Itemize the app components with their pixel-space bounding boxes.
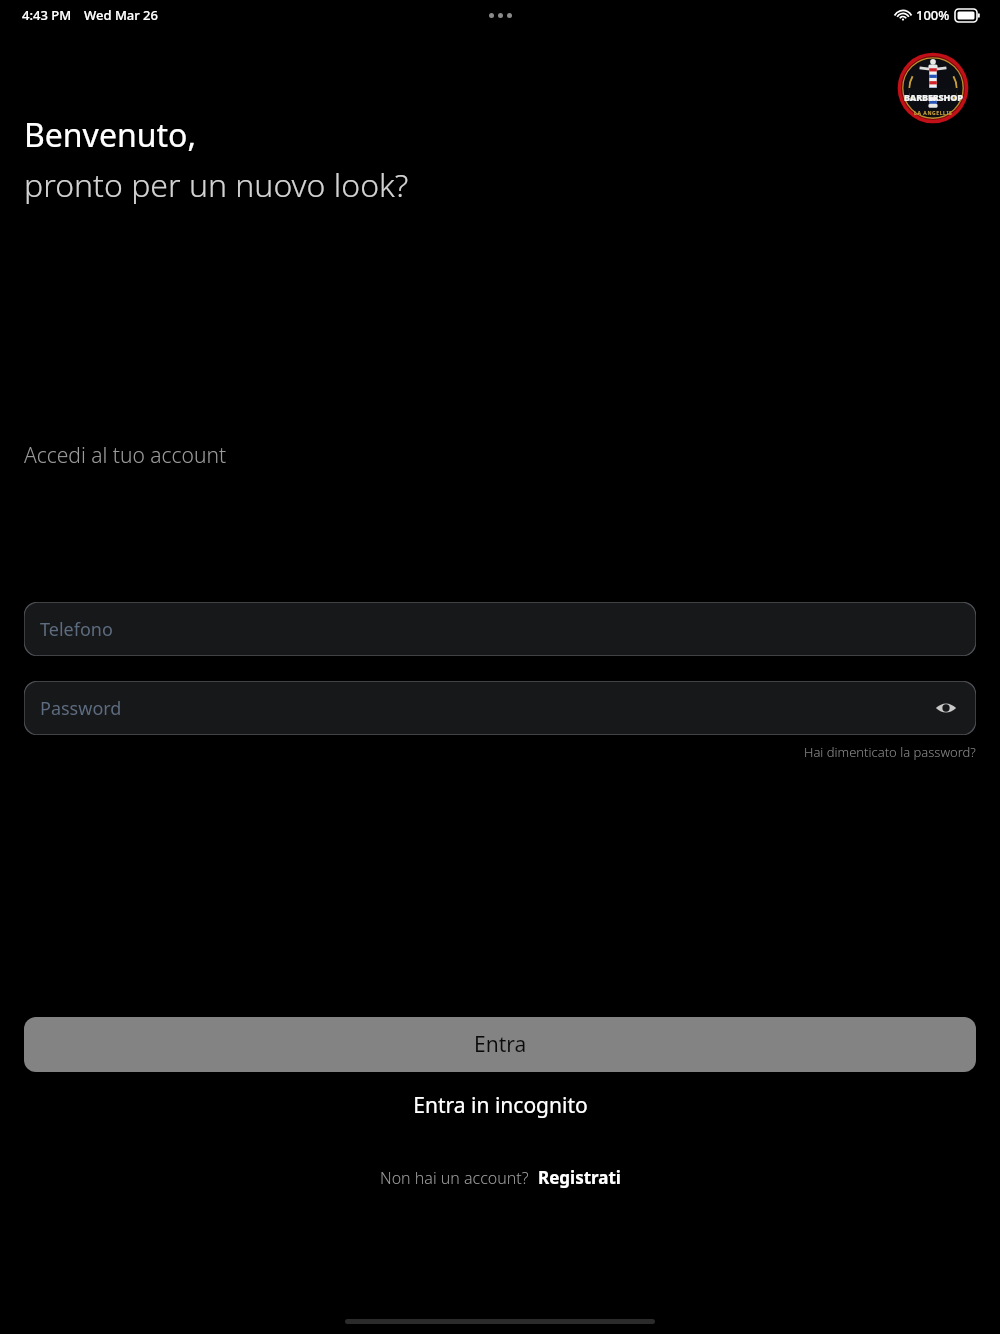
button[interactable]: Show password xyxy=(930,692,962,724)
button[interactable]: Hai dimenticato la password? xyxy=(804,743,976,761)
staticText: Telefono xyxy=(40,617,113,642)
button[interactable]: Entra xyxy=(24,1017,976,1072)
staticText: pronto per un nuovo look? xyxy=(24,163,409,207)
button[interactable]: Password xyxy=(24,681,976,735)
staticText: Wed Mar 26 xyxy=(84,6,158,24)
staticText: 100% xyxy=(916,6,950,24)
staticText: LA ANGELLIS xyxy=(914,110,953,117)
staticText: Entra xyxy=(474,1030,527,1059)
staticText: BARBERSHOP xyxy=(904,91,963,103)
staticText: Non hai un account? xyxy=(380,1167,529,1189)
button[interactable]: Telefono xyxy=(24,602,976,656)
staticText: Password xyxy=(40,696,122,721)
other: Barbershop logo xyxy=(895,50,971,126)
staticText: 4:43 PM xyxy=(22,6,72,24)
button[interactable]: Entra in incognito xyxy=(399,1086,602,1125)
staticText: Accedi al tuo account xyxy=(24,441,227,470)
staticText: Benvenuto, xyxy=(24,113,196,157)
button[interactable]: Registrati xyxy=(538,1166,621,1189)
